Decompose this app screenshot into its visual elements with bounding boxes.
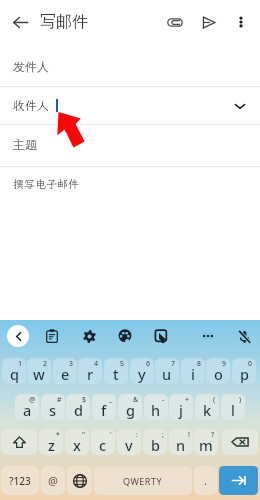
staticText: " <box>82 430 86 440</box>
button[interactable]: 2 <box>27 358 51 384</box>
button[interactable]: Stickers <box>150 325 172 347</box>
button[interactable]: - <box>144 394 168 420</box>
staticText: _ <box>109 395 113 405</box>
button[interactable]: 0 <box>232 358 256 384</box>
button[interactable]: Enter <box>219 466 258 495</box>
staticText: q <box>10 364 19 384</box>
staticText: * <box>56 430 60 440</box>
staticText: # <box>57 395 62 405</box>
button[interactable]: * <box>39 429 63 455</box>
button[interactable]: 9 <box>206 358 230 384</box>
button[interactable]: & <box>118 394 142 420</box>
staticText: QWERTY <box>123 475 163 487</box>
button[interactable]: Backspace <box>222 429 258 455</box>
button[interactable]: 5 <box>104 358 128 384</box>
button[interactable]: Back <box>0 0 40 44</box>
button[interactable]: 4 <box>78 358 102 384</box>
button[interactable]: + <box>169 394 193 420</box>
staticText: p <box>240 364 249 384</box>
staticText: l <box>231 400 235 420</box>
staticText: j <box>179 400 183 420</box>
staticText: 3 <box>69 359 74 369</box>
staticText: + <box>185 395 190 405</box>
staticText: . <box>204 473 207 488</box>
staticText: ( <box>213 395 216 405</box>
button[interactable]: Attach file <box>158 0 192 44</box>
staticText: c <box>99 435 107 455</box>
staticText: w <box>33 364 45 384</box>
button[interactable]: Clipboard <box>41 325 63 347</box>
staticText: ? <box>211 430 215 440</box>
staticText: 8 <box>197 359 202 369</box>
staticText: 0 <box>248 359 253 369</box>
button[interactable]: " <box>65 429 89 455</box>
staticText: $ <box>82 395 87 405</box>
button[interactable]: @ <box>41 466 65 495</box>
button[interactable]: _ <box>92 394 116 420</box>
staticText: r <box>87 364 94 384</box>
button[interactable]: 撰写电子邮件 <box>0 167 260 207</box>
staticText: @ <box>29 395 36 405</box>
staticText: ' <box>110 430 112 440</box>
staticText: z <box>48 435 55 455</box>
button[interactable]: More options <box>197 325 219 347</box>
staticText: t <box>113 364 119 384</box>
button[interactable]: ! <box>169 429 193 455</box>
button[interactable]: More options <box>225 0 257 44</box>
staticText: ) <box>239 395 242 405</box>
button[interactable]: 1 <box>2 358 26 384</box>
staticText: ?123 <box>9 474 31 488</box>
button[interactable]: 收件人 <box>0 87 260 125</box>
staticText: 4 <box>94 359 99 369</box>
staticText: 1 <box>18 359 23 369</box>
staticText: s <box>49 400 57 420</box>
staticText: h <box>151 400 161 420</box>
staticText: 收件人 <box>13 98 50 114</box>
staticText: u <box>162 364 172 384</box>
button[interactable]: ? <box>194 429 218 455</box>
button[interactable]: # <box>41 394 65 420</box>
button[interactable]: $ <box>66 394 90 420</box>
button[interactable]: 主题 <box>0 125 260 166</box>
staticText: 2 <box>43 359 48 369</box>
button[interactable]: ?123 <box>1 466 39 495</box>
button[interactable]: : <box>117 429 141 455</box>
button[interactable]: 8 <box>181 358 205 384</box>
staticText: n <box>176 435 186 455</box>
staticText: ; <box>162 430 164 440</box>
staticText: 6 <box>146 359 151 369</box>
button[interactable]: Voice input off <box>233 325 255 347</box>
staticText: m <box>199 435 213 455</box>
button[interactable]: @ <box>15 394 39 420</box>
button[interactable]: Send <box>192 0 225 44</box>
staticText: x <box>73 435 81 455</box>
button[interactable]: ( <box>195 394 219 420</box>
staticText: : <box>136 430 138 440</box>
staticText: o <box>214 364 223 384</box>
staticText: ! <box>188 430 190 440</box>
button[interactable]: QWERTY <box>94 466 192 495</box>
staticText: i <box>191 364 195 384</box>
button[interactable]: 发件人 <box>0 44 260 87</box>
staticText: - <box>162 395 165 405</box>
staticText: b <box>151 435 160 455</box>
button[interactable]: ; <box>143 429 167 455</box>
button[interactable]: Themes <box>114 325 136 347</box>
staticText: d <box>74 400 83 420</box>
button[interactable]: ' <box>91 429 115 455</box>
button[interactable]: 3 <box>53 358 77 384</box>
staticText: 9 <box>222 359 227 369</box>
button[interactable]: 6 <box>130 358 154 384</box>
button[interactable]: Change language <box>67 466 92 495</box>
button[interactable]: Close toolbar <box>7 325 29 347</box>
button[interactable]: ) <box>221 394 245 420</box>
staticText: y <box>138 364 146 384</box>
staticText: @ <box>48 473 58 488</box>
button[interactable]: Shift <box>1 429 37 455</box>
button[interactable]: Settings <box>78 325 100 347</box>
staticText: 撰写电子邮件 <box>13 177 79 191</box>
button[interactable]: . <box>194 466 217 495</box>
staticText: 写邮件 <box>40 12 88 32</box>
button[interactable]: 7 <box>155 358 179 384</box>
staticText: e <box>61 364 70 384</box>
